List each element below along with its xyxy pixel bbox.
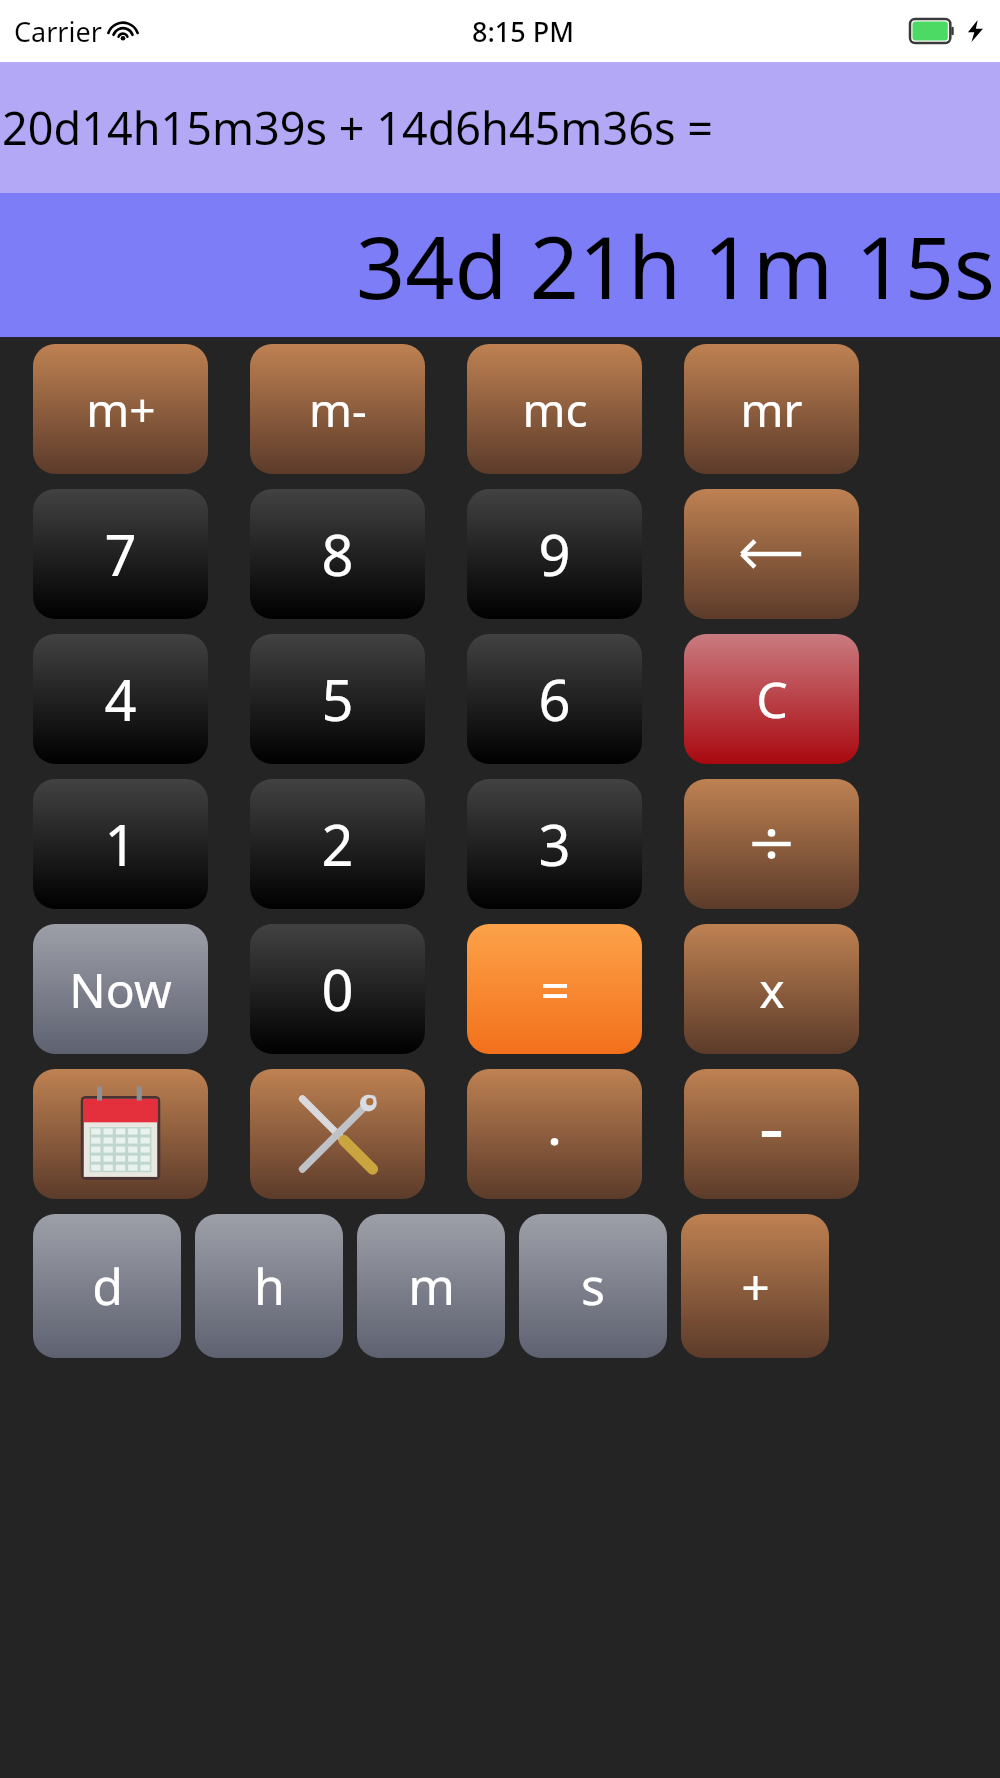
button[interactable]: 5 — [250, 634, 425, 764]
staticText: + — [741, 1252, 770, 1320]
button[interactable]: C — [684, 634, 859, 764]
button[interactable]: d — [33, 1214, 181, 1358]
staticText: 9 — [538, 516, 571, 592]
button[interactable]: m- — [250, 344, 425, 474]
button[interactable]: Minus — [684, 1069, 859, 1199]
button[interactable]: 4 — [33, 634, 208, 764]
staticText: 5 — [321, 661, 354, 737]
staticText: 7 — [104, 516, 137, 592]
button[interactable]: mc — [467, 344, 642, 474]
button[interactable]: 7 — [33, 489, 208, 619]
staticText: 1 — [104, 806, 137, 882]
button[interactable]: 9 — [467, 489, 642, 619]
button[interactable]: x — [684, 924, 859, 1054]
staticText: 8 — [321, 516, 354, 592]
button[interactable]: Date picker — [33, 1069, 208, 1199]
staticText: s — [581, 1252, 605, 1320]
staticText: C — [756, 665, 788, 733]
staticText: h — [254, 1252, 285, 1320]
button[interactable]: 2 — [250, 779, 425, 909]
staticText: 6 — [538, 661, 571, 737]
staticText: 4 — [104, 661, 137, 737]
staticText: 20d14h15m39s + 14d6h45m36s = — [2, 97, 713, 158]
staticText: 2 — [321, 806, 354, 882]
staticText: 34d 21h 1m 15s — [356, 207, 996, 324]
staticText: 0 — [321, 951, 354, 1027]
staticText: 3 — [538, 806, 571, 882]
staticText: = — [540, 954, 570, 1025]
button[interactable]: h — [195, 1214, 343, 1358]
button[interactable]: 3 — [467, 779, 642, 909]
button[interactable]: Divide — [684, 779, 859, 909]
button[interactable]: Decimal point — [467, 1069, 642, 1199]
button[interactable]: Settings — [250, 1069, 425, 1199]
staticText: m- — [309, 378, 367, 441]
staticText: m+ — [86, 378, 156, 441]
button[interactable]: 0 — [250, 924, 425, 1054]
button[interactable]: 6 — [467, 634, 642, 764]
staticText: 8:15 PM — [472, 13, 574, 50]
button[interactable]: m+ — [33, 344, 208, 474]
staticText: x — [759, 957, 785, 1022]
staticText: Now — [69, 957, 172, 1022]
button[interactable]: s — [519, 1214, 667, 1358]
button[interactable]: Now — [33, 924, 208, 1054]
button[interactable]: 1 — [33, 779, 208, 909]
button[interactable]: mr — [684, 344, 859, 474]
staticText: mr — [740, 378, 803, 441]
staticText: d — [92, 1252, 123, 1320]
staticText: m — [408, 1252, 455, 1320]
button[interactable]: 8 — [250, 489, 425, 619]
button[interactable]: + — [681, 1214, 829, 1358]
button[interactable]: Backspace — [684, 489, 859, 619]
staticText: mc — [522, 378, 588, 441]
staticText: Carrier — [14, 13, 102, 50]
button[interactable]: = — [467, 924, 642, 1054]
button[interactable]: m — [357, 1214, 505, 1358]
